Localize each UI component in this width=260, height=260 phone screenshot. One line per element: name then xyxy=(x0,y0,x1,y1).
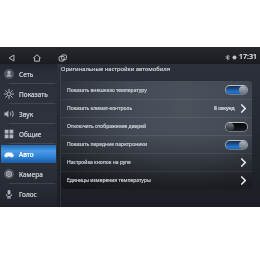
staticText: Показать климат-контроль xyxy=(67,105,133,112)
staticText: Общие xyxy=(19,130,42,139)
button[interactable]: Общие xyxy=(0,124,57,144)
staticText: Сеть xyxy=(19,70,34,79)
staticText: Показать xyxy=(19,90,48,99)
button[interactable]: Open xyxy=(239,157,248,168)
button[interactable]: Звук xyxy=(0,104,57,124)
staticText: 8 секунд xyxy=(214,105,235,112)
staticText: Камера xyxy=(19,170,43,179)
staticText: Настройка кнопок на руле xyxy=(67,159,131,166)
button[interactable]: Back xyxy=(5,47,18,64)
button[interactable]: On xyxy=(226,86,247,94)
button[interactable]: Единицы измерения температуры xyxy=(61,172,252,189)
staticText: Показать внешнюю температуру xyxy=(67,87,147,94)
staticText: Оригинальные настройки автомобиля xyxy=(61,65,170,73)
staticText: Отключить отображение дверей xyxy=(67,123,147,130)
button[interactable]: Open xyxy=(239,175,248,186)
button[interactable]: Отключить отображение дверей xyxy=(61,118,252,135)
button[interactable]: Показать передние парктроники xyxy=(61,136,252,153)
staticText: Показать передние парктроники xyxy=(67,141,148,148)
button[interactable]: Off xyxy=(226,123,247,131)
button[interactable]: Показать xyxy=(0,84,57,104)
button[interactable]: Камера xyxy=(0,164,57,184)
button[interactable]: Показать внешнюю температуру xyxy=(61,81,252,99)
button[interactable]: Голос xyxy=(0,184,57,204)
staticText: Звук xyxy=(19,110,34,119)
staticText: Авто xyxy=(19,150,34,159)
button[interactable]: Сеть xyxy=(0,64,57,84)
button[interactable]: Авто xyxy=(0,144,57,164)
button[interactable]: On xyxy=(226,141,247,149)
button[interactable]: Recents xyxy=(56,47,69,64)
staticText: Голос xyxy=(19,190,37,199)
staticText: Единицы измерения температуры xyxy=(67,177,151,184)
staticText: 17:31 xyxy=(239,52,257,62)
button[interactable]: Показать климат-контроль xyxy=(61,100,252,117)
button[interactable]: Настройка кнопок на руле xyxy=(61,154,252,171)
button[interactable]: Open xyxy=(239,103,248,114)
button[interactable]: Home xyxy=(30,47,43,64)
